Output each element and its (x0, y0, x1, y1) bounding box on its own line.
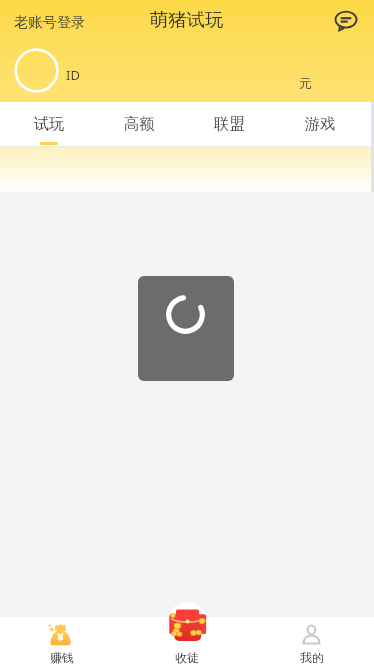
staticText: 赚钱 (50, 650, 74, 665)
staticText: ID (66, 66, 80, 84)
button[interactable]: 高额 (94, 102, 184, 145)
staticText: 收徒 (175, 650, 199, 665)
staticText: 联盟 (214, 114, 245, 133)
button[interactable]: 联盟 (184, 102, 275, 145)
button[interactable]: 我的 (249, 617, 374, 667)
button[interactable]: 老账号登录 (0, 7, 94, 37)
button[interactable]: Messages (335, 11, 357, 31)
button[interactable]: 游戏 (275, 102, 366, 145)
staticText: 高额 (124, 114, 155, 133)
button[interactable]: 赚钱 (0, 617, 124, 667)
button[interactable]: 收徒 (167, 602, 208, 643)
staticText: 我的 (300, 650, 324, 665)
button[interactable]: Avatar (14, 48, 59, 93)
button[interactable]: 收徒 (124, 617, 249, 667)
staticText: 试玩 (34, 114, 65, 133)
staticText: 元 (299, 75, 312, 91)
button[interactable]: 试玩 (4, 102, 94, 145)
staticText: 萌猪试玩 (150, 8, 224, 31)
staticText: 游戏 (305, 114, 336, 133)
